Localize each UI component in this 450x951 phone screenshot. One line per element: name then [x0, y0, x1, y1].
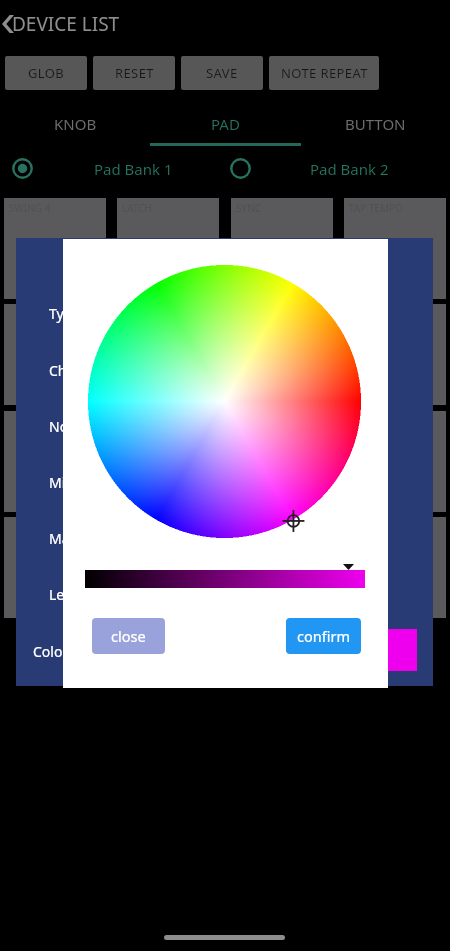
staticText: Max	[49, 529, 77, 548]
staticText: SAVE	[206, 64, 238, 82]
staticText: Note	[49, 417, 82, 436]
staticText: BUTTON	[345, 114, 406, 134]
button[interactable]	[117, 517, 219, 618]
staticText: close	[111, 626, 146, 646]
button[interactable]: confirm	[286, 618, 361, 654]
button[interactable]: Brightness	[85, 570, 365, 588]
button[interactable]: SYNC	[231, 198, 333, 299]
button[interactable]	[4, 517, 106, 618]
other: Back	[2, 15, 14, 33]
staticText: Pad Bank 1	[94, 159, 173, 179]
button[interactable]: LATCH	[117, 198, 219, 299]
staticText: PAD	[211, 114, 240, 134]
staticText: GLOB	[28, 64, 65, 82]
button[interactable]: Back	[0, 7, 120, 41]
staticText: NOTE REPEAT	[281, 64, 368, 82]
button[interactable]: GLOB	[5, 56, 87, 90]
button[interactable]: NOTE REPEAT	[269, 56, 379, 90]
button[interactable]: Pad Bank 1	[12, 153, 234, 184]
staticText: confirm	[297, 626, 350, 646]
staticText: Level	[49, 585, 83, 604]
button[interactable]	[344, 411, 446, 512]
button[interactable]	[344, 517, 446, 618]
staticText: KNOB	[54, 114, 97, 134]
button[interactable]: close	[92, 618, 165, 654]
button[interactable]: TAP TEMPO	[344, 198, 446, 299]
button[interactable]: SWING 4	[4, 198, 106, 299]
button[interactable]: Colour wheel	[88, 265, 361, 538]
staticText: Colour	[33, 642, 77, 661]
staticText: Pad Bank 2	[310, 159, 389, 179]
button[interactable]: BUTTON	[300, 108, 450, 140]
button[interactable]: SAVE	[181, 56, 263, 90]
button[interactable]	[4, 411, 106, 512]
button[interactable]: RESET	[93, 56, 175, 90]
button[interactable]	[117, 411, 219, 512]
button[interactable]: PAD	[150, 108, 300, 140]
staticText: Type	[49, 304, 81, 323]
staticText: DEVICE LIST	[12, 11, 120, 37]
button[interactable]	[4, 304, 106, 405]
staticText: Channel	[49, 361, 104, 380]
button[interactable]: KNOB	[0, 108, 150, 140]
button[interactable]	[231, 304, 333, 405]
button[interactable]	[117, 304, 219, 405]
button[interactable]: Pad colour	[381, 629, 417, 671]
button[interactable]	[231, 517, 333, 618]
staticText: RESET	[115, 64, 154, 82]
button[interactable]	[231, 411, 333, 512]
button[interactable]	[344, 304, 446, 405]
button[interactable]: Pad Bank 2	[230, 153, 448, 184]
staticText: Min	[49, 473, 74, 492]
